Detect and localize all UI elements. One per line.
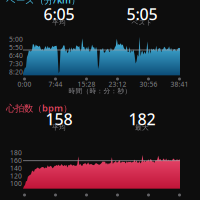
staticText: 23:12	[108, 80, 126, 89]
staticText: 6:05	[43, 3, 74, 25]
staticText: 30:56	[139, 80, 157, 89]
staticText: 120	[10, 171, 22, 180]
staticText: 180	[10, 148, 22, 157]
staticText: 6:40	[9, 51, 23, 60]
staticText: 8:20	[9, 67, 23, 76]
staticText: 0:00	[17, 80, 31, 89]
staticText: 5:50	[9, 43, 23, 52]
staticText: 140	[10, 164, 22, 173]
staticText: 15:28	[77, 80, 95, 89]
staticText: 心拍数（bpm）	[6, 102, 72, 114]
staticText: ペース（分/km）	[6, 0, 80, 6]
staticText: 5:00	[9, 35, 23, 44]
staticText: 7:44	[48, 80, 62, 89]
staticText: 160	[10, 156, 22, 165]
staticText: 100	[10, 179, 22, 188]
staticText: 158	[45, 108, 72, 130]
staticText: 182	[128, 108, 155, 130]
staticText: 平均	[52, 18, 66, 27]
staticText: 最大	[135, 123, 149, 132]
staticText: 7:30	[9, 59, 23, 68]
staticText: 38:41	[170, 80, 188, 89]
staticText: 5:05	[126, 3, 157, 25]
staticText: ベスト	[131, 18, 152, 27]
staticText: 時間（時：分：秒）	[68, 87, 131, 95]
staticText: 平均	[52, 123, 66, 132]
